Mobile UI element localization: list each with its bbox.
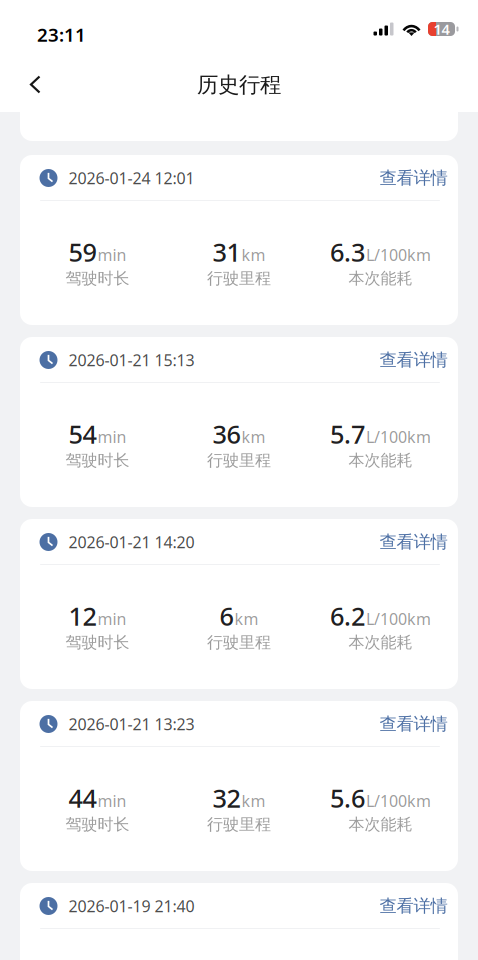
staticText: km bbox=[241, 426, 265, 447]
staticText: 驾驶时长 bbox=[65, 451, 129, 470]
staticText: L/100km bbox=[366, 426, 431, 447]
button[interactable]: 查看详情 bbox=[379, 527, 447, 557]
staticText: L/100km bbox=[366, 608, 431, 629]
staticText: 驾驶时长 bbox=[65, 633, 129, 652]
button[interactable]: Back bbox=[13, 62, 57, 106]
staticText: 6 bbox=[219, 599, 233, 633]
staticText: 2026-01-21 14:20 bbox=[68, 531, 194, 553]
button[interactable]: 查看详情 bbox=[379, 891, 447, 921]
staticText: 本次能耗 bbox=[348, 451, 412, 470]
staticText: 31 bbox=[212, 235, 240, 269]
staticText: 历史行程 bbox=[197, 72, 281, 98]
staticText: 44 bbox=[68, 781, 96, 815]
staticText: 12 bbox=[68, 599, 96, 633]
staticText: 2026-01-21 15:13 bbox=[68, 349, 194, 371]
staticText: 本次能耗 bbox=[348, 269, 412, 288]
staticText: 行驶里程 bbox=[207, 633, 271, 652]
staticText: 本次能耗 bbox=[348, 633, 412, 652]
staticText: 驾驶时长 bbox=[65, 269, 129, 288]
staticText: L/100km bbox=[366, 790, 431, 811]
staticText: 行驶里程 bbox=[207, 451, 271, 470]
staticText: 59 bbox=[68, 235, 96, 269]
staticText: km bbox=[234, 608, 258, 629]
staticText: min bbox=[97, 426, 126, 447]
staticText: 54 bbox=[68, 417, 96, 451]
staticText: 6.3 bbox=[330, 235, 365, 269]
button[interactable]: 查看详情 bbox=[379, 709, 447, 739]
staticText: 2026-01-19 21:40 bbox=[68, 895, 194, 917]
staticText: 36 bbox=[212, 417, 240, 451]
staticText: 查看详情 bbox=[379, 895, 447, 917]
staticText: 32 bbox=[212, 781, 240, 815]
staticText: 2026-01-24 12:01 bbox=[68, 167, 194, 189]
staticText: L/100km bbox=[366, 244, 431, 265]
button[interactable]: 查看详情 bbox=[379, 163, 447, 193]
staticText: min bbox=[97, 608, 126, 629]
staticText: 查看详情 bbox=[379, 531, 447, 553]
staticText: 23:11 bbox=[37, 22, 86, 47]
staticText: min bbox=[97, 244, 126, 265]
staticText: 5.7 bbox=[330, 417, 365, 451]
staticText: 14 bbox=[433, 19, 449, 39]
staticText: 查看详情 bbox=[379, 167, 447, 189]
staticText: 5.6 bbox=[330, 781, 365, 815]
staticText: 行驶里程 bbox=[207, 815, 271, 834]
staticText: 本次能耗 bbox=[348, 815, 412, 834]
staticText: km bbox=[241, 244, 265, 265]
staticText: 行驶里程 bbox=[207, 269, 271, 288]
staticText: 2026-01-21 13:23 bbox=[68, 713, 194, 735]
button[interactable]: 查看详情 bbox=[379, 345, 447, 375]
staticText: 驾驶时长 bbox=[65, 815, 129, 834]
staticText: km bbox=[241, 790, 265, 811]
staticText: min bbox=[97, 790, 126, 811]
staticText: 6.2 bbox=[330, 599, 365, 633]
staticText: 查看详情 bbox=[379, 349, 447, 371]
staticText: 查看详情 bbox=[379, 713, 447, 735]
